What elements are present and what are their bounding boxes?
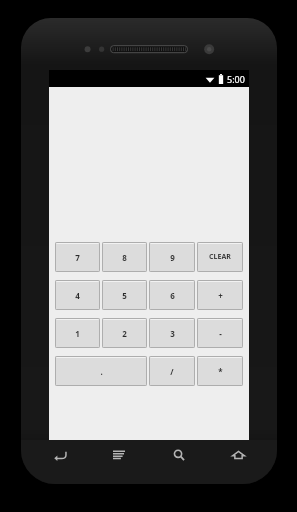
staticText: 4 bbox=[75, 290, 80, 301]
staticText: 5 bbox=[122, 290, 127, 301]
button[interactable]: . bbox=[55, 356, 147, 386]
staticText: 2 bbox=[122, 328, 127, 339]
button[interactable]: 4 bbox=[55, 280, 100, 310]
button[interactable]: 8 bbox=[102, 242, 147, 272]
button[interactable]: 1 bbox=[55, 318, 100, 348]
button[interactable]: / bbox=[149, 356, 195, 386]
staticText: - bbox=[219, 328, 222, 339]
staticText: / bbox=[170, 366, 174, 377]
staticText: 3 bbox=[170, 328, 175, 339]
staticText: * bbox=[218, 366, 223, 377]
button[interactable]: - bbox=[197, 318, 243, 348]
button[interactable]: Menu bbox=[106, 444, 132, 466]
staticText: 1 bbox=[75, 328, 80, 339]
button[interactable]: 5 bbox=[102, 280, 147, 310]
staticText: CLEAR bbox=[209, 252, 231, 262]
staticText: 5:00 bbox=[227, 73, 245, 85]
button[interactable]: 7 bbox=[55, 242, 100, 272]
staticText: 9 bbox=[170, 252, 175, 263]
staticText: + bbox=[218, 290, 223, 301]
staticText: 6 bbox=[170, 290, 175, 301]
button[interactable]: * bbox=[197, 356, 243, 386]
button[interactable]: CLEAR bbox=[197, 242, 243, 272]
button[interactable]: 9 bbox=[149, 242, 195, 272]
button[interactable]: + bbox=[197, 280, 243, 310]
button[interactable]: Back bbox=[47, 444, 73, 466]
button[interactable]: Search bbox=[166, 444, 192, 466]
button[interactable]: 3 bbox=[149, 318, 195, 348]
button[interactable]: Home bbox=[225, 444, 251, 466]
staticText: 8 bbox=[122, 252, 127, 263]
staticText: . bbox=[100, 366, 103, 377]
button[interactable]: 6 bbox=[149, 280, 195, 310]
button[interactable]: 2 bbox=[102, 318, 147, 348]
staticText: 7 bbox=[75, 252, 80, 263]
